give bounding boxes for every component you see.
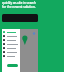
button[interactable]	[2, 30, 20, 34]
button[interactable]	[7, 64, 18, 67]
button[interactable]	[2, 14, 38, 22]
button[interactable]	[2, 50, 20, 54]
button[interactable]	[2, 38, 20, 42]
staticText: for the newest solution.	[2, 5, 36, 9]
button[interactable]	[2, 34, 20, 38]
staticText: quickly on-site in search	[2, 1, 36, 5]
button[interactable]	[2, 42, 20, 46]
button[interactable]	[2, 46, 20, 50]
button[interactable]	[2, 54, 20, 58]
